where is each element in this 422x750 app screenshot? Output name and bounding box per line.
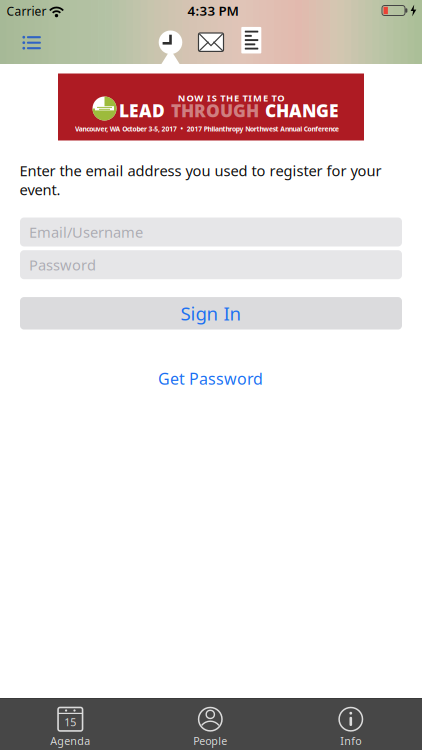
staticText: LEAD bbox=[119, 99, 165, 122]
staticText: Sign In bbox=[180, 301, 241, 326]
button[interactable] bbox=[240, 26, 262, 54]
staticText: People bbox=[193, 734, 227, 748]
staticText: THROUGH bbox=[171, 99, 259, 122]
staticText: event. bbox=[19, 180, 60, 199]
button[interactable]: Get Password bbox=[158, 368, 263, 389]
staticText: Get Password bbox=[158, 368, 263, 389]
button[interactable]: Email/Username bbox=[20, 217, 402, 246]
staticText: Password bbox=[29, 255, 96, 274]
staticText: 15 bbox=[64, 715, 76, 729]
button[interactable]: 15 bbox=[0, 698, 140, 750]
button[interactable] bbox=[155, 27, 185, 72]
staticText: Info bbox=[340, 734, 361, 748]
staticText: NOW IS THE TIME TO bbox=[178, 92, 284, 104]
staticText: Agenda bbox=[50, 734, 90, 748]
staticText: Email/Username bbox=[29, 222, 143, 242]
staticText: 4:33 PM bbox=[187, 2, 238, 19]
button[interactable]: Info bbox=[281, 698, 421, 750]
button[interactable]: NOW IS THE TIME TO bbox=[58, 73, 364, 140]
button[interactable] bbox=[197, 31, 224, 53]
button[interactable] bbox=[21, 35, 43, 51]
button[interactable]: Password bbox=[20, 250, 402, 279]
staticText: Enter the email address you used to regi… bbox=[19, 161, 381, 180]
staticText: CHANGE bbox=[265, 99, 339, 122]
staticText: Carrier bbox=[6, 3, 46, 19]
staticText: Vancouver, WA October 3-5, 2017 • 2017 P… bbox=[75, 125, 339, 133]
button[interactable]: People bbox=[140, 698, 280, 750]
button[interactable]: Sign In bbox=[20, 297, 402, 330]
